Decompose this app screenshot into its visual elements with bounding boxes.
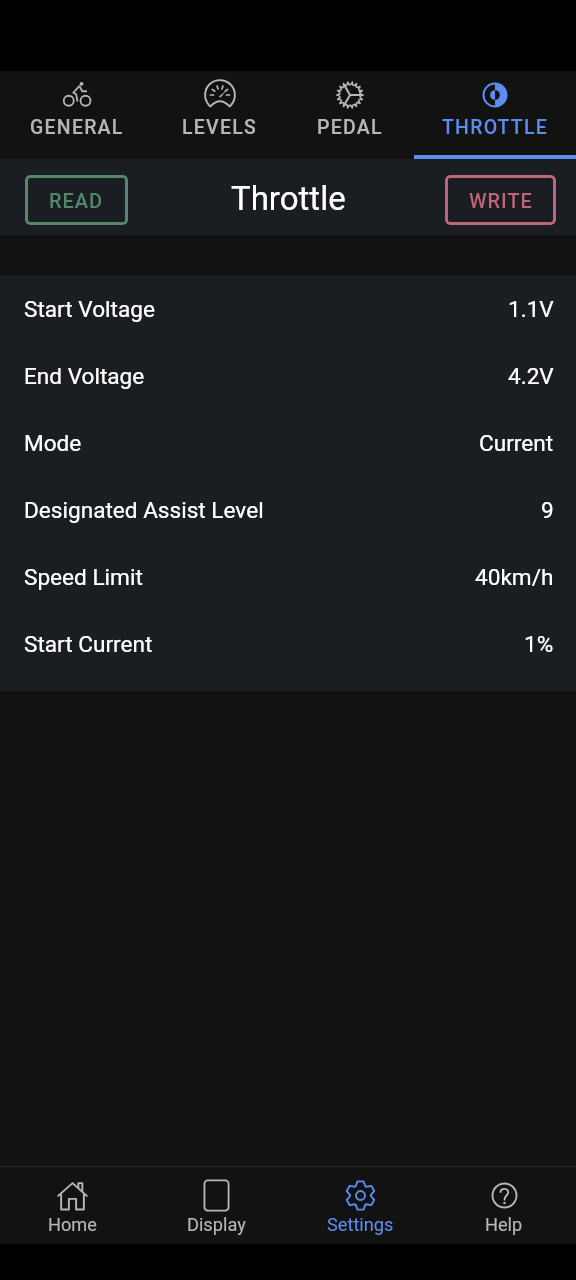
staticText: 1.1V	[508, 296, 554, 322]
staticText: PEDAL	[317, 116, 383, 139]
button[interactable]: Start Voltage	[0, 275, 576, 342]
staticText: Help	[485, 1214, 523, 1235]
other: Pedal tab	[335, 80, 365, 110]
staticText: Designated Assist Level	[24, 497, 264, 523]
other: Throttle tab	[480, 80, 510, 110]
staticText: Mode	[24, 430, 82, 456]
button[interactable]: Start Current	[0, 610, 576, 677]
other: Help	[489, 1180, 520, 1211]
staticText: Current	[479, 430, 554, 456]
staticText: Speed Limit	[24, 564, 143, 590]
button[interactable]: Display	[144, 1167, 288, 1235]
button[interactable]: Settings	[288, 1167, 432, 1235]
other: General tab	[62, 80, 92, 110]
staticText: WRITE	[469, 189, 533, 212]
staticText: READ	[49, 189, 104, 212]
button[interactable]: Designated Assist Level	[0, 476, 576, 543]
staticText: Start Current	[24, 631, 153, 657]
button[interactable]: Mode	[0, 409, 576, 476]
staticText: GENERAL	[30, 116, 124, 139]
other: Levels tab	[205, 80, 235, 110]
staticText: Start Voltage	[24, 296, 155, 322]
staticText: 40km/h	[475, 564, 554, 590]
staticText: 4.2V	[508, 363, 554, 389]
staticText: Settings	[327, 1214, 394, 1235]
button[interactable]: End Voltage	[0, 342, 576, 409]
other: Settings	[345, 1180, 376, 1211]
button[interactable]: Throttle tab	[414, 71, 576, 159]
button[interactable]: Help	[432, 1167, 576, 1235]
staticText: 1%	[524, 631, 554, 657]
button[interactable]: General tab	[0, 71, 153, 159]
button[interactable]: Levels tab	[153, 71, 286, 159]
staticText: LEVELS	[182, 116, 258, 139]
staticText: Home	[48, 1214, 97, 1235]
button[interactable]: READ	[25, 175, 128, 225]
staticText: Display	[187, 1214, 246, 1235]
button[interactable]: Home	[0, 1167, 144, 1235]
staticText: 9	[541, 497, 554, 523]
button[interactable]: Pedal tab	[286, 71, 414, 159]
other: Display	[201, 1180, 232, 1211]
other: Home	[57, 1180, 88, 1211]
staticText: Throttle	[231, 179, 346, 218]
staticText: THROTTLE	[442, 116, 548, 139]
button[interactable]: WRITE	[445, 175, 556, 225]
button[interactable]: Speed Limit	[0, 543, 576, 610]
staticText: End Voltage	[24, 363, 145, 389]
